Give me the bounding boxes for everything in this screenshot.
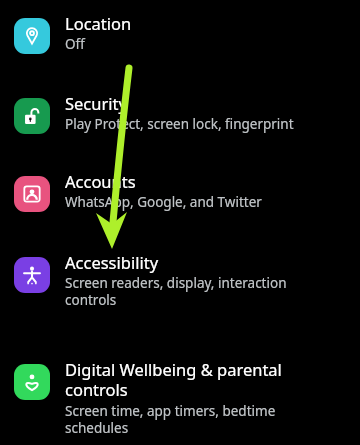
- other: Accessibility: [14, 257, 50, 293]
- button[interactable]: Location: [0, 0, 360, 84]
- staticText: Screen readers, display, interaction con…: [65, 274, 287, 309]
- staticText: WhatsApp, Google, and Twitter: [65, 193, 262, 211]
- other: Security: [14, 98, 50, 134]
- staticText: Accessibility: [65, 251, 159, 273]
- staticText: Play Protect, screen lock, fingerprint: [65, 115, 294, 133]
- button[interactable]: Digital Wellbeing & parental controls: [0, 341, 360, 445]
- staticText: Digital Wellbeing & parental controls: [65, 358, 282, 401]
- staticText: Location: [65, 12, 132, 34]
- staticText: Accounts: [65, 170, 136, 192]
- button[interactable]: Accounts: [0, 165, 360, 244]
- button[interactable]: Accessibility: [0, 244, 360, 341]
- other: Digital Wellbeing & parental controls: [14, 364, 50, 400]
- staticText: Security: [65, 92, 127, 114]
- other: Accounts: [14, 176, 50, 212]
- other: Location: [14, 18, 50, 54]
- staticText: Off: [65, 35, 85, 53]
- staticText: Screen time, app timers, bedtime schedul…: [65, 402, 276, 437]
- button[interactable]: Security: [0, 84, 360, 165]
